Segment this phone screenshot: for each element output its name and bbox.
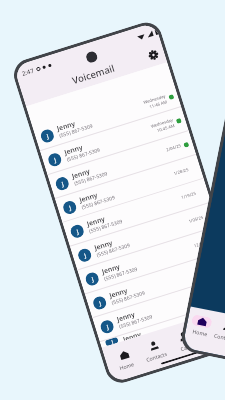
button[interactable]: Calls bbox=[166, 327, 202, 355]
staticText: 1/19/25 bbox=[180, 191, 197, 201]
button[interactable]: J bbox=[92, 274, 225, 342]
button[interactable]: J bbox=[85, 250, 225, 318]
button[interactable]: J bbox=[77, 226, 225, 294]
staticText: 2:47 bbox=[21, 67, 35, 78]
staticText: Jenny bbox=[86, 214, 106, 228]
staticText: Contacts bbox=[145, 350, 168, 363]
staticText: J bbox=[91, 275, 95, 283]
staticText: 12/31/24 bbox=[193, 238, 212, 250]
staticText: Jenny bbox=[101, 262, 121, 276]
staticText: Voicemail bbox=[71, 61, 116, 87]
staticText: Jenny bbox=[93, 238, 114, 252]
staticText: 1/05/25 bbox=[187, 215, 204, 225]
staticText: Jenny bbox=[56, 119, 76, 133]
staticText: Jenny bbox=[108, 286, 129, 300]
staticText: J bbox=[76, 228, 80, 236]
staticText: (555) 867-5309 bbox=[111, 289, 146, 307]
staticText: (555) 867-5309 bbox=[96, 242, 131, 259]
staticText: Wednesday 11:46 AM bbox=[142, 93, 168, 111]
staticText: Voicemail bbox=[203, 331, 225, 345]
staticText: Jenny bbox=[63, 143, 84, 157]
button[interactable]: J bbox=[55, 155, 204, 223]
staticText: Home bbox=[118, 360, 135, 371]
staticText: J bbox=[61, 180, 65, 188]
staticText: Jenny bbox=[71, 166, 91, 181]
button[interactable]: Home bbox=[107, 345, 142, 374]
button[interactable]: Voicemail bbox=[196, 317, 225, 346]
staticText: 1/28/25 bbox=[172, 167, 189, 177]
staticText: Jenny bbox=[116, 309, 136, 324]
button[interactable]: Contacts bbox=[212, 319, 225, 343]
staticText: J bbox=[83, 251, 87, 260]
staticText: (555) 867-5309 bbox=[118, 313, 154, 330]
staticText: (555) 867-5309 bbox=[73, 170, 109, 187]
staticText: 2/04/25 bbox=[165, 143, 182, 154]
staticText: J bbox=[68, 204, 72, 212]
button[interactable]: J bbox=[70, 202, 219, 271]
staticText: Wednesday 10:45 AM bbox=[150, 117, 175, 135]
button[interactable]: J bbox=[33, 83, 181, 151]
staticText: J bbox=[106, 323, 110, 331]
staticText: J bbox=[53, 156, 58, 164]
staticText: J bbox=[98, 299, 102, 307]
button[interactable]: Contacts bbox=[136, 336, 172, 364]
staticText: (555) 867-5309 bbox=[103, 266, 139, 283]
staticText: 12/02/24 bbox=[212, 301, 225, 313]
button[interactable]: Home bbox=[186, 313, 216, 338]
staticText: (555) 867-5309 bbox=[58, 122, 94, 140]
button[interactable]: J bbox=[62, 179, 211, 247]
staticText: (555) 867-5309 bbox=[81, 194, 116, 211]
button[interactable]: J bbox=[40, 107, 189, 175]
staticText: (555) 867-5309 bbox=[88, 218, 124, 235]
staticText: Jenny bbox=[122, 330, 142, 341]
staticText: Home bbox=[192, 327, 208, 337]
button[interactable]: J bbox=[48, 131, 196, 199]
button[interactable]: J bbox=[100, 298, 225, 348]
staticText: Contacts bbox=[214, 332, 225, 343]
staticText: (555) 867-5309 bbox=[66, 146, 101, 163]
staticText: J bbox=[110, 338, 114, 345]
button[interactable]: Settings bbox=[145, 46, 161, 63]
staticText: Calls bbox=[179, 342, 193, 352]
staticText: Jenny bbox=[78, 190, 99, 205]
staticText: J bbox=[46, 132, 50, 140]
